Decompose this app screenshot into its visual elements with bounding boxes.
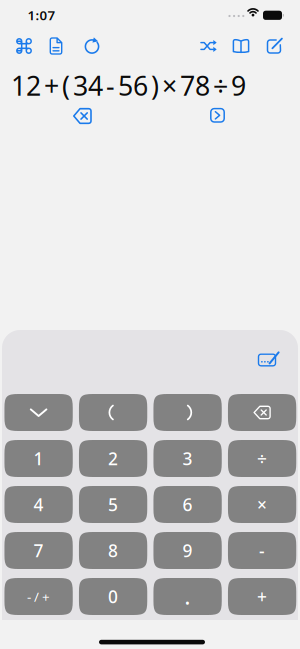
button[interactable]: 3 bbox=[153, 440, 222, 477]
button[interactable]: 4 bbox=[4, 486, 73, 523]
button[interactable]: Compose bbox=[259, 31, 289, 61]
button[interactable]: New document bbox=[41, 31, 71, 61]
button[interactable]: ( bbox=[79, 394, 147, 431]
button[interactable]: Dismiss keyboard bbox=[4, 394, 73, 431]
button[interactable]: plus/minus bbox=[4, 578, 73, 615]
button[interactable]: multiply bbox=[228, 486, 296, 523]
staticText: 1 bbox=[34, 447, 44, 470]
button[interactable]: 0 bbox=[79, 578, 147, 615]
staticText: . bbox=[185, 582, 191, 611]
button[interactable]: minus bbox=[228, 532, 296, 569]
button[interactable]: 8 bbox=[79, 532, 147, 569]
staticText: ( bbox=[62, 68, 70, 103]
staticText: - / + bbox=[27, 588, 50, 605]
staticText: 5 bbox=[108, 493, 118, 516]
button[interactable]: . bbox=[153, 578, 222, 615]
button[interactable]: 7 bbox=[4, 532, 73, 569]
button[interactable]: divide bbox=[228, 440, 296, 477]
staticText: 12 bbox=[11, 68, 41, 103]
button[interactable]: Evaluate bbox=[201, 100, 233, 130]
staticText: ) bbox=[151, 68, 159, 103]
staticText: 0 bbox=[108, 585, 118, 608]
staticText: 78 bbox=[180, 68, 210, 103]
staticText: 8 bbox=[108, 539, 118, 562]
staticText: × bbox=[257, 493, 267, 516]
staticText: 9 bbox=[231, 68, 246, 103]
staticText: × bbox=[162, 68, 177, 103]
staticText: - bbox=[259, 539, 265, 562]
button[interactable]: Delete bbox=[228, 394, 296, 431]
staticText: + bbox=[44, 68, 59, 103]
button[interactable]: Shuffle bbox=[193, 31, 223, 61]
button[interactable]: 1 bbox=[4, 440, 73, 477]
staticText: 34 bbox=[73, 68, 103, 103]
button[interactable]: 5 bbox=[79, 486, 147, 523]
button[interactable]: Reset bbox=[77, 31, 107, 61]
staticText: 6 bbox=[183, 493, 193, 516]
staticText: + bbox=[257, 585, 267, 608]
staticText: 1:07 bbox=[27, 6, 55, 24]
staticText: 56 bbox=[118, 68, 148, 103]
button[interactable]: ) bbox=[153, 394, 222, 431]
staticText: 2 bbox=[108, 447, 118, 470]
staticText: 7 bbox=[34, 539, 44, 562]
button[interactable]: 2 bbox=[79, 440, 147, 477]
staticText: - bbox=[106, 68, 115, 103]
staticText: ÷ bbox=[213, 68, 228, 103]
button[interactable]: 6 bbox=[153, 486, 222, 523]
button[interactable]: Edit keyboard bbox=[250, 340, 284, 374]
button[interactable]: Keyboard shortcuts bbox=[9, 31, 39, 61]
button[interactable]: plus bbox=[228, 578, 296, 615]
staticText: ÷ bbox=[257, 447, 267, 470]
button[interactable]: Delete bbox=[66, 101, 98, 131]
staticText: 4 bbox=[34, 493, 44, 516]
button[interactable]: 9 bbox=[153, 532, 222, 569]
staticText: 3 bbox=[183, 447, 193, 470]
button[interactable]: Library bbox=[226, 31, 256, 61]
staticText: 9 bbox=[183, 539, 193, 562]
